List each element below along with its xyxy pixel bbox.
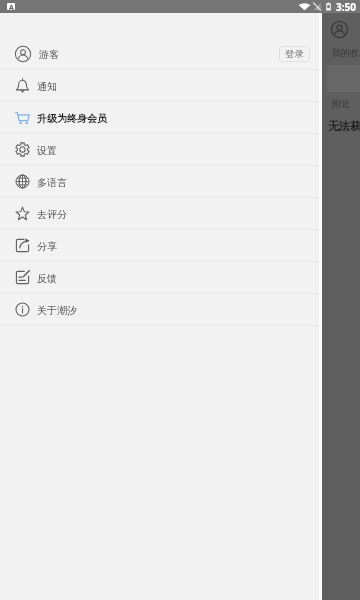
- button[interactable]: 去评分: [0, 198, 319, 229]
- staticText: 分享: [37, 240, 57, 253]
- staticText: 通知: [37, 80, 57, 93]
- button[interactable]: 升级为终身会员: [0, 102, 319, 133]
- button[interactable]: 登录: [279, 46, 310, 62]
- button[interactable]: 通知: [0, 70, 319, 101]
- staticText: 关于潮汐: [37, 304, 77, 317]
- staticText: 附近: [332, 98, 350, 109]
- staticText: 3:50: [336, 0, 356, 13]
- staticText: 去评分: [37, 208, 67, 221]
- staticText: 我的收藏: [332, 47, 360, 58]
- button[interactable]: 关于潮汐: [0, 294, 319, 325]
- staticText: 游客: [39, 48, 59, 61]
- button[interactable]: 多语言: [0, 166, 319, 197]
- staticText: 登录: [285, 48, 304, 60]
- button[interactable]: 游客: [0, 38, 319, 69]
- staticText: 无法获取: [328, 119, 360, 133]
- button[interactable]: 反馈: [0, 262, 319, 293]
- staticText: 多语言: [37, 176, 67, 189]
- staticText: 设置: [37, 144, 57, 157]
- button[interactable]: 设置: [0, 134, 319, 165]
- staticText: 反馈: [37, 272, 57, 285]
- staticText: A: [9, 3, 14, 10]
- staticText: 升级为终身会员: [37, 112, 107, 125]
- button[interactable]: 分享: [0, 230, 319, 261]
